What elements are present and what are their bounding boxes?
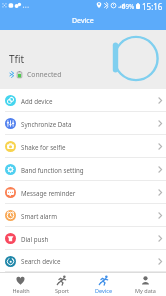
staticText: Shake for selfie [21,143,66,151]
button[interactable]: Sport [41,273,82,296]
button[interactable]: Add device [0,89,166,112]
staticText: Device [72,16,94,26]
staticText: Add device [21,97,53,105]
staticText: Dial push [21,235,49,243]
button[interactable]: Health [0,273,41,296]
button[interactable]: Smart alarm [0,204,166,227]
staticText: Device [95,287,112,294]
staticText: Search device [21,257,61,265]
staticText: Smart alarm [21,212,57,220]
button[interactable]: Message reminder [0,181,166,204]
staticText: Connected [27,70,62,79]
staticText: Tfit [9,52,25,66]
staticText: 59% [122,2,135,10]
staticText: Sport [55,287,69,294]
button[interactable]: Device [82,273,124,296]
staticText: Health [12,287,30,294]
button[interactable]: Search device [0,250,166,272]
staticText: My data [135,287,156,294]
staticText: Message reminder [21,189,76,197]
button[interactable]: My data [124,273,166,296]
button[interactable]: Synchronize Data [0,112,166,135]
staticText: 15:16 [142,1,163,12]
button[interactable]: Dial push [0,227,166,250]
staticText: Synchronize Data [21,120,72,128]
button[interactable]: Band function setting [0,158,166,181]
button[interactable]: Shake for selfie [0,135,166,158]
staticText: Band function setting [21,166,84,174]
